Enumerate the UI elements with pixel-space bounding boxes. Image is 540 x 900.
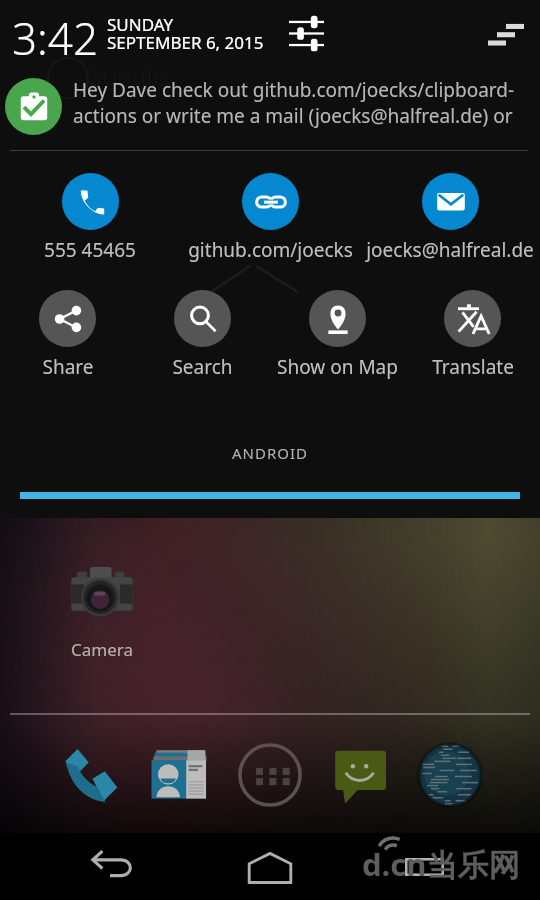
button[interactable]: 555 45465 (0, 173, 180, 263)
staticText: github.com/joecks (188, 237, 353, 263)
button[interactable]: Camera (57, 566, 147, 661)
staticText: Search (172, 354, 233, 380)
button[interactable]: Browser (412, 737, 488, 813)
staticText: 3:42 (12, 8, 99, 68)
staticText: 555 45465 (44, 237, 136, 263)
button[interactable]: github.com/joecks (180, 173, 360, 263)
staticText: SUNDAY (107, 13, 174, 36)
button[interactable]: Phone (52, 737, 128, 813)
staticText: Google (84, 58, 167, 92)
staticText: Share (42, 354, 94, 380)
staticText: Show on Map (277, 354, 398, 380)
staticText: Camera (71, 638, 133, 661)
staticText: SEPTEMBER 6, 2015 (107, 31, 264, 54)
button[interactable]: Messaging (322, 737, 398, 813)
staticText: joecks@halfreal.de (366, 237, 534, 263)
button[interactable]: Quick settings (284, 11, 328, 55)
button[interactable]: Notification options (483, 11, 528, 56)
button[interactable]: joecks@halfreal.de (360, 173, 540, 263)
button[interactable]: Hey Dave check out github.com/joecks/cli… (0, 62, 540, 150)
staticText: d.cn当乐网 (362, 843, 520, 885)
button[interactable]: Translate (405, 290, 540, 380)
button[interactable]: Recent apps (404, 855, 444, 879)
button[interactable]: Share (0, 290, 135, 380)
button[interactable]: Search (135, 290, 270, 380)
staticText: Translate (432, 354, 514, 380)
staticText: Hey Dave check out github.com/joecks/cli… (73, 77, 533, 129)
button[interactable]: Apps (232, 737, 308, 813)
button[interactable]: People (142, 737, 218, 813)
button[interactable]: Home (244, 843, 296, 895)
button[interactable]: Back (88, 844, 136, 892)
button[interactable]: Show on Map (270, 290, 405, 380)
staticText: ANDROID (232, 443, 309, 463)
